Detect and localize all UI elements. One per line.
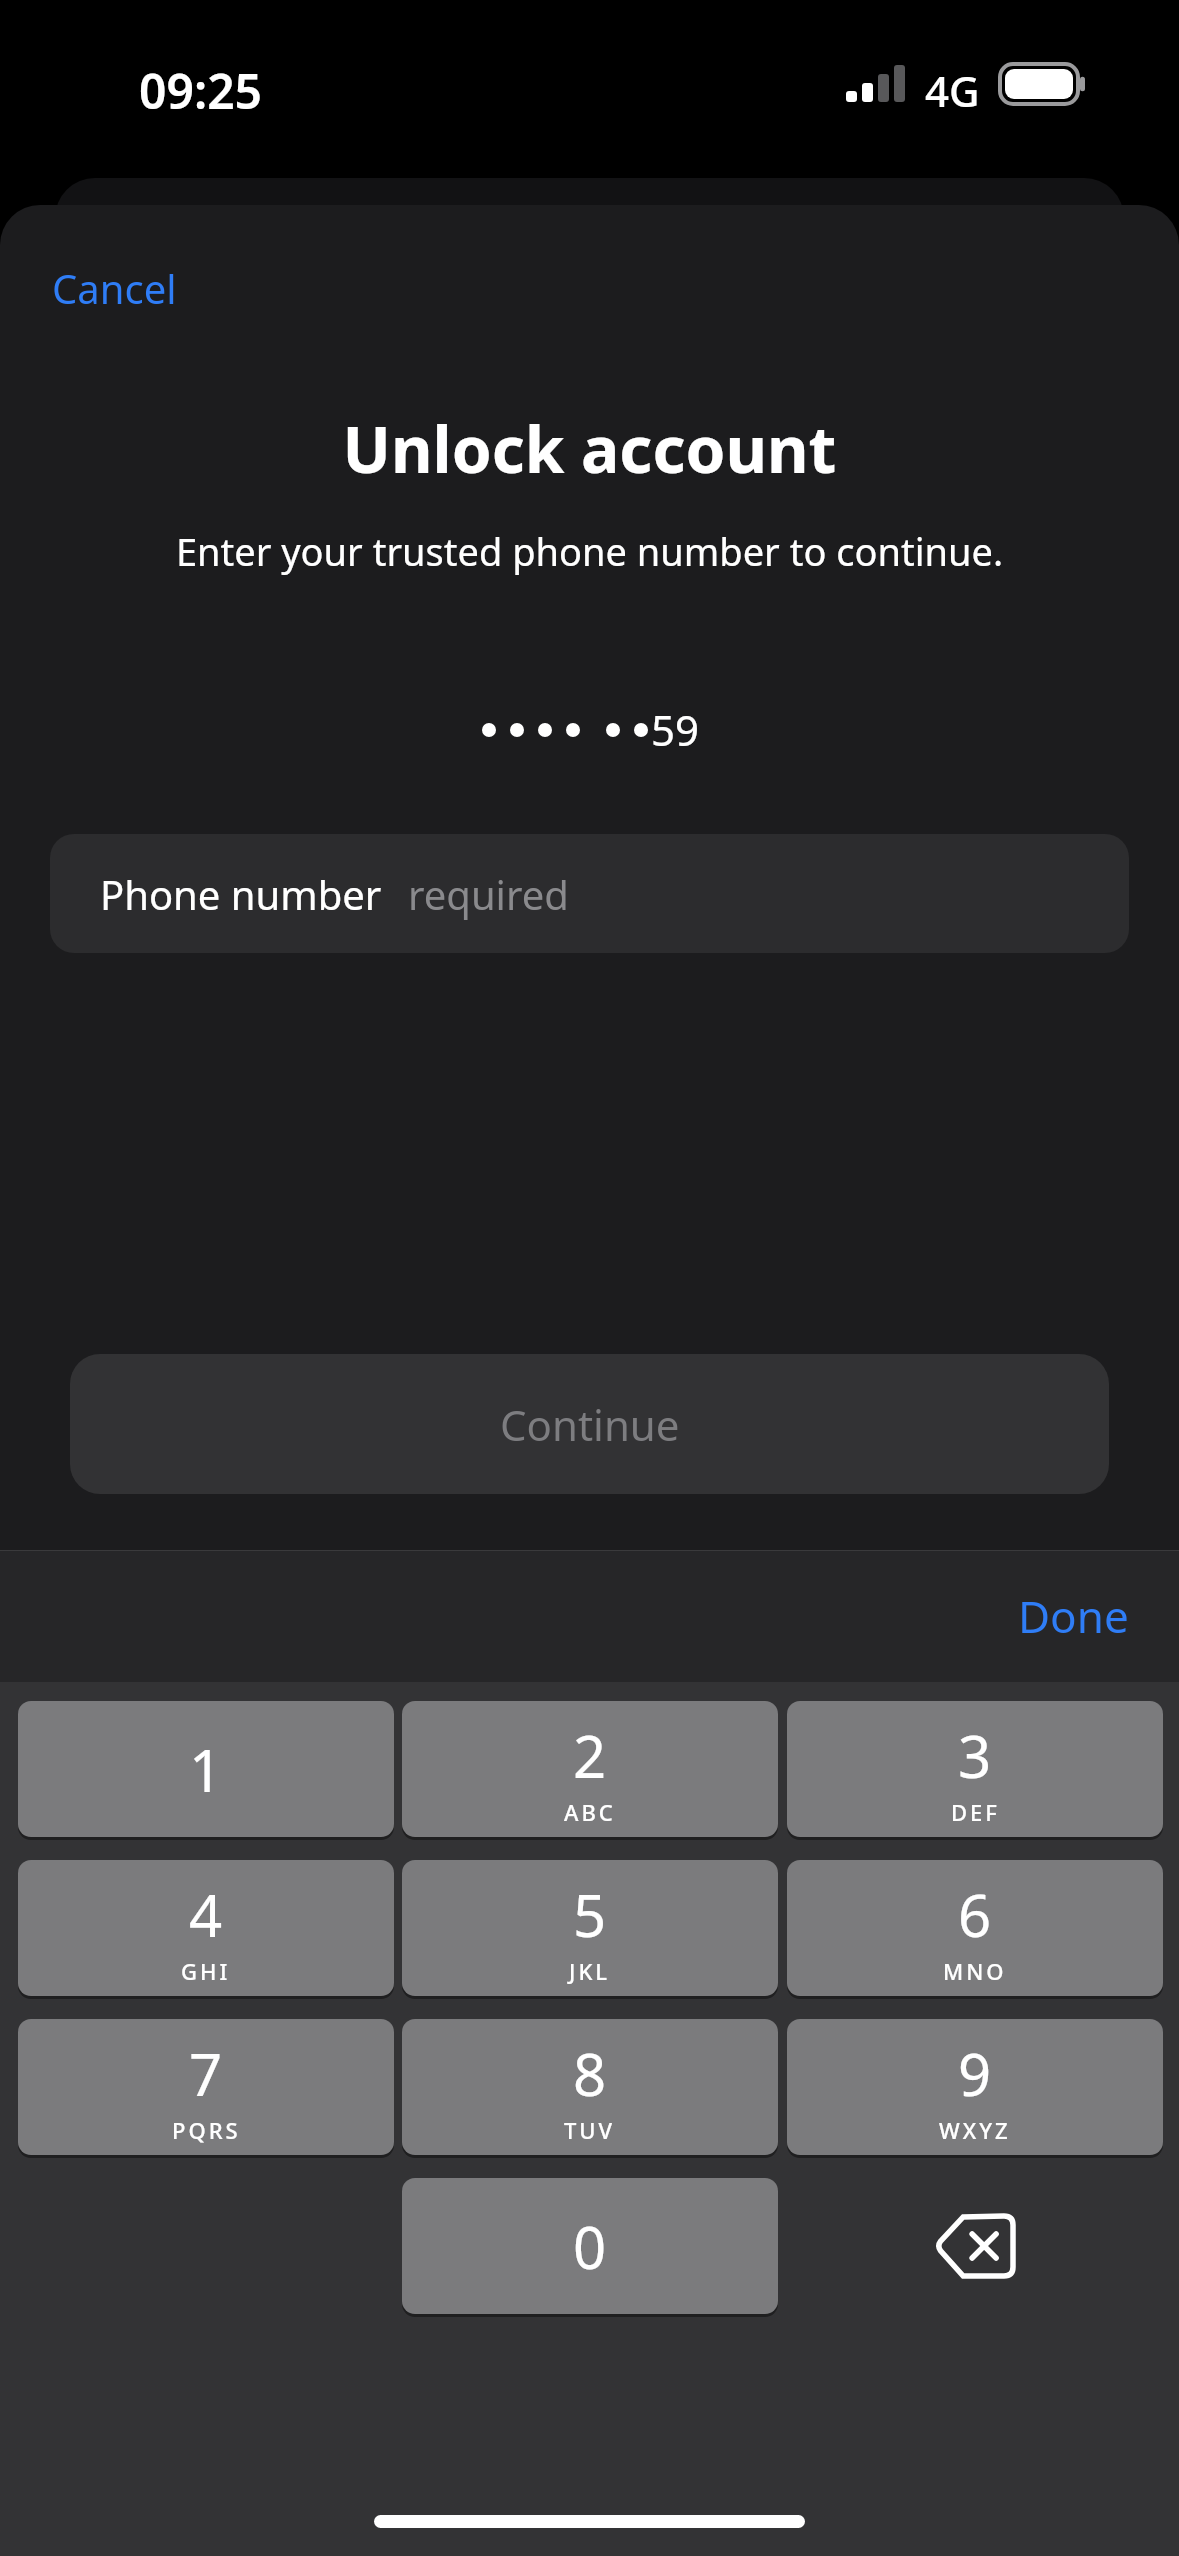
button[interactable]: Delete	[787, 2178, 1163, 2314]
staticText: Continue	[500, 1396, 680, 1453]
button[interactable]: 5	[402, 1860, 778, 1996]
staticText: Done	[1018, 1586, 1129, 1646]
staticText: ABC	[564, 1797, 616, 1827]
staticText: 2	[573, 1716, 607, 1795]
staticText: 3	[958, 1716, 992, 1795]
button[interactable]: 0	[402, 2178, 778, 2314]
staticText: WXYZ	[939, 2115, 1011, 2145]
staticText: 4	[189, 1875, 223, 1954]
button[interactable]: 2	[402, 1701, 778, 1837]
staticText: 1	[189, 1730, 223, 1809]
staticText: 4G	[925, 62, 980, 119]
staticText: MNO	[943, 1956, 1007, 1986]
button[interactable]: 1	[18, 1701, 394, 1837]
button[interactable]: Continue	[70, 1354, 1109, 1494]
button[interactable]: 9	[787, 2019, 1163, 2155]
staticText: 9	[958, 2034, 992, 2113]
staticText: Unlock account	[0, 405, 1179, 492]
button[interactable]: 4	[18, 1860, 394, 1996]
staticText: 5	[573, 1875, 607, 1954]
button[interactable]: Phone number	[50, 834, 1129, 953]
staticText: 6	[958, 1875, 992, 1954]
staticText: 7	[189, 2034, 223, 2113]
button[interactable]: 6	[787, 1860, 1163, 1996]
staticText: required	[408, 867, 569, 921]
button[interactable]: Done	[996, 1570, 1151, 1662]
staticText: Enter your trusted phone number to conti…	[40, 525, 1139, 577]
staticText: 59	[651, 701, 700, 758]
staticText: DEF	[951, 1797, 1000, 1827]
staticText: PQRS	[172, 2115, 241, 2145]
staticText: 09:25	[139, 58, 263, 123]
staticText: 0	[573, 2207, 607, 2286]
staticText: GHI	[181, 1956, 231, 1986]
staticText: JKL	[569, 1956, 611, 1986]
staticText: Cancel	[52, 261, 177, 315]
button[interactable]: 8	[402, 2019, 778, 2155]
button[interactable]: Cancel	[30, 247, 199, 329]
button[interactable]: 7	[18, 2019, 394, 2155]
staticText: 8	[573, 2034, 607, 2113]
button[interactable]: 3	[787, 1701, 1163, 1837]
staticText: Phone number	[100, 867, 382, 921]
staticText: TUV	[564, 2115, 616, 2145]
